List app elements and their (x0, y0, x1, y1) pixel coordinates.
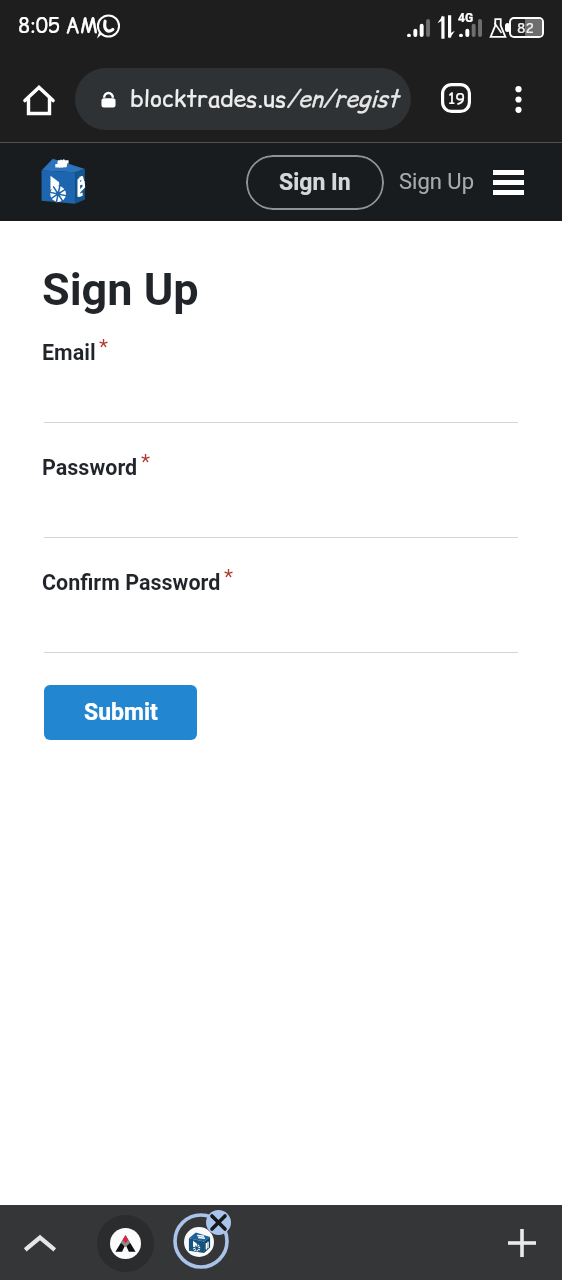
staticText: Sign In (279, 169, 351, 196)
staticText: Confirm Password (42, 570, 221, 595)
staticText: 8:05 AM (18, 12, 98, 40)
button[interactable]: Sign Up (392, 155, 480, 209)
button[interactable]: New tab (494, 1205, 550, 1280)
staticText: Email (42, 340, 96, 365)
staticText: Sign Up (399, 169, 474, 195)
staticText: * (141, 450, 151, 475)
button[interactable]: Expand toolbar (15, 1205, 65, 1280)
staticText: 82 (517, 19, 535, 35)
staticText: 19 (448, 87, 465, 109)
button[interactable]: Current tab blocktrades (173, 1210, 231, 1268)
staticText: 4G (458, 11, 474, 25)
button[interactable]: Submit (44, 685, 197, 740)
staticText: Submit (84, 699, 158, 726)
button[interactable]: Sign In (246, 155, 384, 210)
staticText: Password (42, 455, 138, 480)
staticText: * (99, 335, 109, 360)
staticText: blocktrades.us/en/regist (130, 83, 399, 115)
staticText: * (224, 565, 234, 590)
button[interactable]: More options (495, 56, 541, 143)
button[interactable]: Menu (486, 155, 530, 209)
button[interactable]: Aloha tab (97, 1215, 154, 1272)
button[interactable]: Home (10, 56, 68, 143)
button[interactable]: blocktrades.us/en/regist (75, 68, 411, 130)
button[interactable]: Tabs (441, 83, 471, 113)
staticText: Sign Up (42, 263, 199, 316)
